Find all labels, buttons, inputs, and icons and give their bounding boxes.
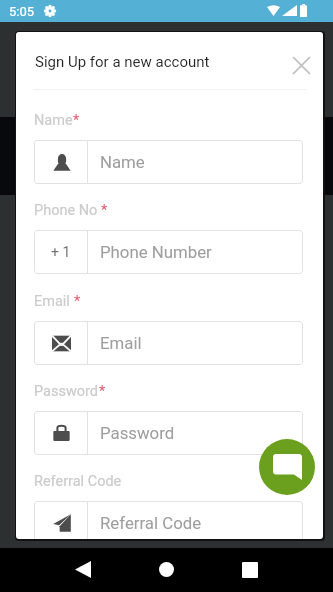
button[interactable]: Name <box>34 140 303 184</box>
button[interactable]: Chat <box>259 439 315 495</box>
button[interactable]: Home <box>145 548 188 591</box>
staticText: Password <box>34 383 99 400</box>
staticText: Referral Code <box>34 473 122 490</box>
staticText: Name <box>34 112 73 129</box>
button[interactable]: Email <box>34 321 303 365</box>
button[interactable]: Recents <box>228 548 271 591</box>
staticText: + 1 <box>51 244 71 260</box>
staticText: Sign Up for a new account <box>35 53 210 71</box>
staticText: * <box>101 202 108 219</box>
button[interactable]: Referral Code <box>34 501 303 539</box>
staticText: * <box>99 383 106 400</box>
staticText: Phone No <box>34 202 101 219</box>
staticText: Referral Code <box>100 513 202 533</box>
staticText: 5:05 <box>9 4 35 19</box>
staticText: * <box>73 112 80 129</box>
staticText: Email <box>100 333 142 353</box>
staticText: Phone Number <box>100 242 212 262</box>
button[interactable]: Password <box>34 411 303 455</box>
staticText: Name <box>100 152 145 172</box>
button[interactable]: + 1 <box>34 230 303 274</box>
button[interactable]: Back <box>61 548 104 591</box>
staticText: * <box>74 293 81 310</box>
button[interactable]: Close <box>284 48 318 82</box>
staticText: Email <box>34 293 74 310</box>
staticText: Password <box>100 423 175 443</box>
